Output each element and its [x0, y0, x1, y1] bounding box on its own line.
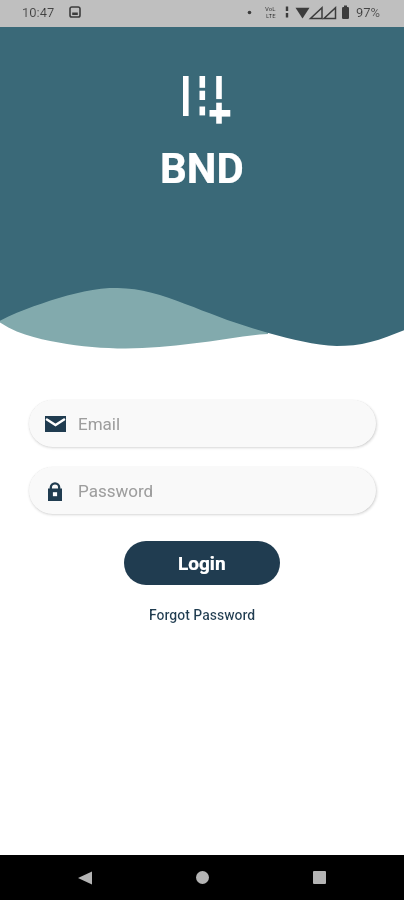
button[interactable]: Email	[29, 400, 376, 447]
staticText: LTE	[266, 12, 276, 19]
button[interactable]: Back	[61, 855, 109, 900]
staticText: Login	[178, 552, 226, 574]
staticText: Password	[78, 481, 154, 501]
staticText: VoL	[265, 5, 276, 12]
button[interactable]: Password	[29, 467, 376, 514]
staticText: BND	[160, 144, 244, 193]
staticText: 97%	[356, 5, 381, 20]
button[interactable]: Login	[124, 541, 280, 585]
staticText: 10:47	[22, 5, 55, 20]
button[interactable]: Recents	[295, 855, 343, 900]
staticText: Forgot Password	[149, 607, 256, 623]
button[interactable]: Home	[178, 855, 226, 900]
staticText: Email	[78, 414, 121, 434]
button[interactable]: Forgot Password	[141, 602, 264, 628]
